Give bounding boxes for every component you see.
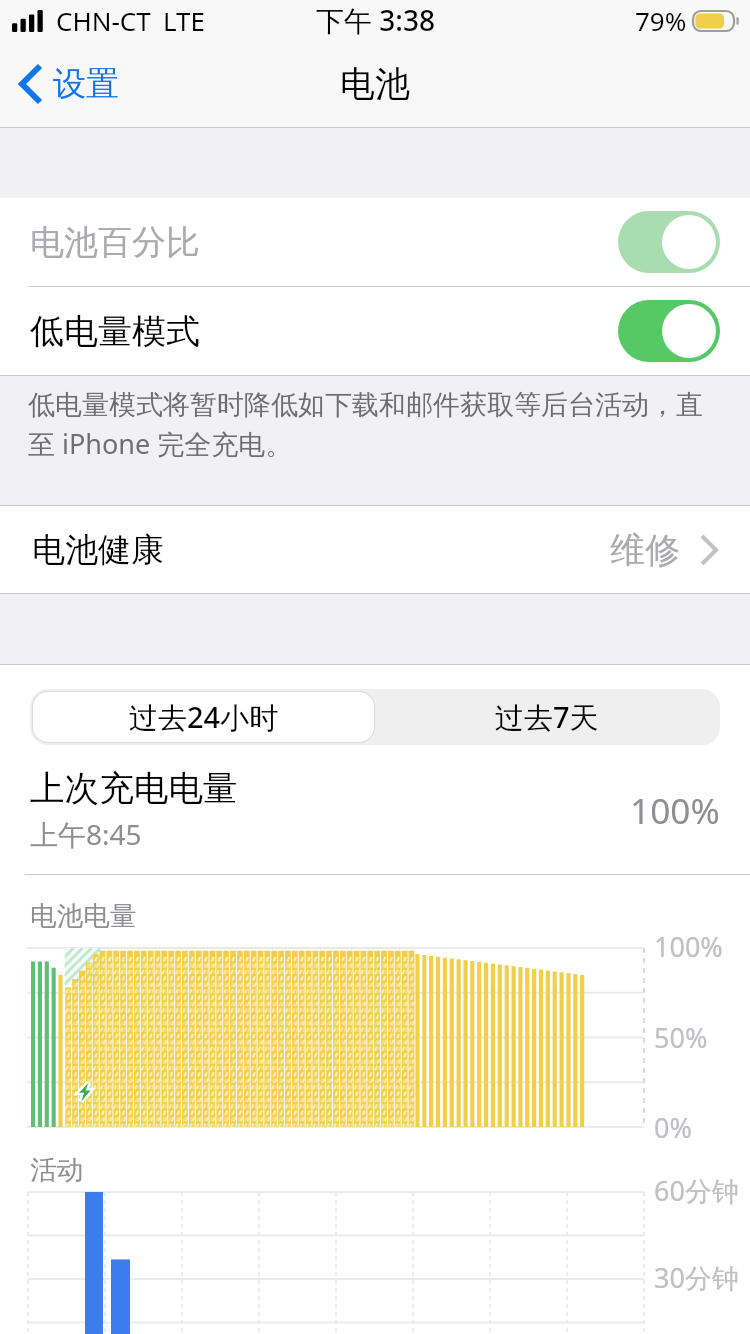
staticText: 活动: [30, 1153, 84, 1187]
staticText: 100%: [630, 786, 720, 834]
button[interactable]: Toggle: [618, 300, 720, 362]
staticText: 0%: [654, 1109, 692, 1146]
staticText: 79%: [635, 3, 687, 38]
staticText: 电池百分比: [30, 221, 200, 264]
staticText: LTE: [163, 3, 206, 38]
staticText: 电池电量: [30, 899, 137, 933]
staticText: 下午 3:38: [316, 1, 435, 39]
button[interactable]: 电池健康: [0, 506, 750, 593]
staticText: 电池: [340, 62, 410, 106]
staticText: 电池健康: [32, 529, 164, 571]
staticText: 30分钟: [654, 1259, 739, 1296]
button[interactable]: 低电量模式: [0, 287, 750, 375]
staticText: 低电量模式将暂时降低如下载和邮件获取等后台活动，直 至 iPhone 完全充电。: [28, 388, 703, 462]
staticText: 100%: [654, 928, 723, 965]
staticText: 低电量模式: [30, 310, 200, 353]
staticText: 过去24小时: [129, 697, 279, 737]
staticText: 50%: [654, 1019, 708, 1056]
staticText: 60分钟: [654, 1172, 739, 1209]
button[interactable]: 电池百分比: [0, 198, 750, 286]
button[interactable]: 设置: [0, 55, 139, 113]
staticText: 设置: [53, 63, 119, 105]
staticText: 上次充电电量: [30, 767, 238, 811]
button[interactable]: Toggle: [618, 211, 720, 273]
staticText: 过去7天: [495, 697, 599, 737]
staticText: 上午8:45: [30, 815, 142, 853]
staticText: 维修: [610, 528, 680, 572]
button[interactable]: 过去24小时: [33, 692, 374, 742]
staticText: CHN-CT: [56, 3, 151, 38]
button[interactable]: 过去7天: [375, 691, 718, 743]
